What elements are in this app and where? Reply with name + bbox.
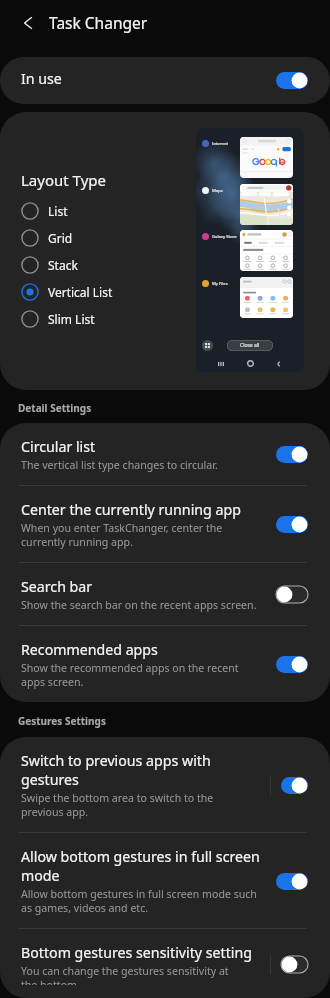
- staticText: Detail Settings: [18, 401, 92, 415]
- staticText: Recommended apps: [21, 640, 158, 659]
- staticText: The vertical list type changes to circul…: [21, 458, 218, 472]
- staticText: Slim List: [48, 311, 95, 327]
- staticText: Search bar: [21, 577, 93, 596]
- button[interactable]: In use: [0, 57, 330, 104]
- staticText: Task Changer: [49, 12, 148, 33]
- button[interactable]: Allow bottom gestures in full screen mod…: [0, 833, 330, 928]
- staticText: Circular list: [21, 437, 96, 456]
- button[interactable]: Circular list: [0, 423, 330, 485]
- button[interactable]: Bottom gestures sensitivity setting: [0, 929, 330, 998]
- staticText: Layout Type: [21, 170, 106, 190]
- staticText: You can change the gestures sensitivity …: [21, 964, 229, 985]
- staticText: Swipe the bottom area to switch to the p…: [21, 791, 214, 819]
- staticText: Stack: [48, 257, 78, 273]
- button[interactable]: Back: [15, 10, 41, 36]
- button[interactable]: Stack: [21, 251, 78, 278]
- staticText: Close all: [240, 342, 260, 349]
- staticText: Allow bottom gestures in full screen mod…: [21, 887, 257, 915]
- staticText: Show the search bar on the recent apps s…: [21, 598, 257, 612]
- staticText: Center the currently running app: [21, 500, 241, 519]
- staticText: Maps: [212, 188, 223, 194]
- staticText: Bottom gestures sensitivity setting: [21, 943, 252, 962]
- staticText: Vertical List: [48, 284, 113, 300]
- staticText: In use: [21, 69, 62, 88]
- button[interactable]: Grid: [21, 224, 73, 251]
- button[interactable]: Vertical List: [21, 278, 113, 305]
- staticText: List: [48, 203, 68, 219]
- staticText: Galaxy Store: [212, 234, 237, 240]
- staticText: Internet: [212, 141, 229, 147]
- button[interactable]: Switch to previous apps with gestures: [0, 737, 330, 832]
- button[interactable]: Recommended apps: [0, 626, 330, 702]
- staticText: When you enter TaskChanger, center the c…: [21, 521, 223, 549]
- staticText: Allow bottom gestures in full screen mod…: [21, 847, 260, 885]
- staticText: Switch to previous apps with gestures: [21, 751, 211, 789]
- staticText: Grid: [48, 230, 73, 246]
- button[interactable]: Slim List: [21, 305, 95, 332]
- button[interactable]: Search bar: [0, 563, 330, 625]
- button[interactable]: List: [21, 197, 68, 224]
- staticText: Show the recommended apps on the recent …: [21, 661, 239, 689]
- staticText: My Files: [212, 281, 228, 287]
- staticText: Gestures Settings: [18, 714, 106, 728]
- button[interactable]: Center the currently running app: [0, 486, 330, 562]
